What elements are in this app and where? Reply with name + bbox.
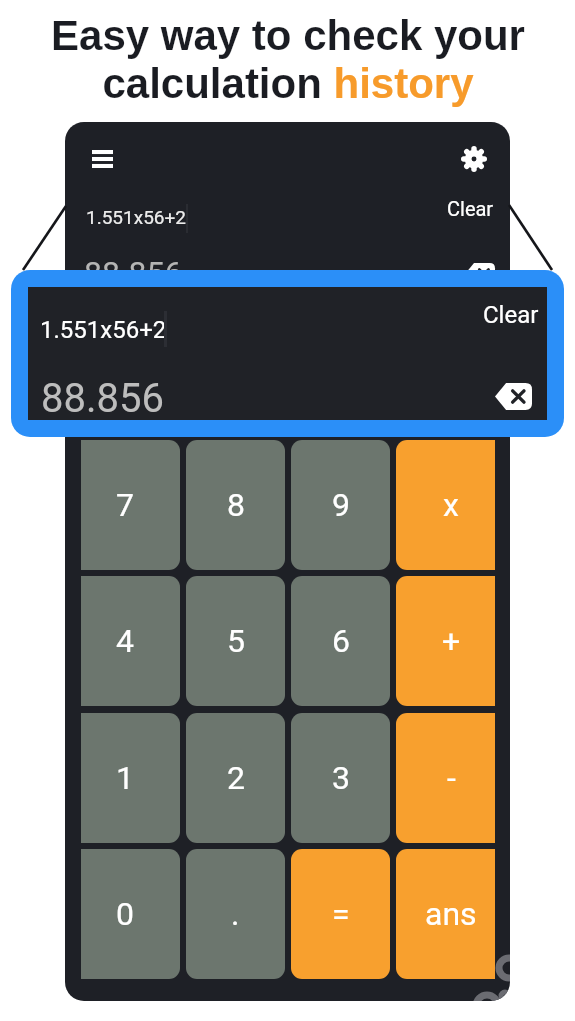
- staticText: Clear: [447, 197, 494, 220]
- button[interactable]: ans: [396, 849, 495, 979]
- button[interactable]: Backspace: [495, 383, 532, 410]
- button[interactable]: 5: [186, 576, 285, 706]
- staticText: 2: [227, 759, 245, 797]
- staticText: 9: [332, 486, 350, 524]
- staticText: 7: [116, 486, 134, 524]
- staticText: x: [443, 486, 459, 524]
- button[interactable]: 3: [291, 713, 390, 843]
- button[interactable]: Backspace: [465, 263, 495, 285]
- button[interactable]: 4: [81, 576, 180, 706]
- staticText: ans: [425, 895, 477, 933]
- button[interactable]: =: [291, 849, 390, 979]
- staticText: 3: [332, 759, 350, 797]
- staticText: 8: [227, 486, 245, 524]
- button[interactable]: -: [396, 713, 495, 843]
- staticText: 0: [116, 895, 134, 933]
- button[interactable]: 1: [81, 713, 180, 843]
- button[interactable]: 7: [81, 440, 180, 570]
- button[interactable]: 9: [291, 440, 390, 570]
- staticText: 1.551x56+2: [86, 206, 186, 228]
- staticText: Easy way to check your calculation histo…: [51, 12, 525, 107]
- button[interactable]: Settings: [461, 146, 487, 172]
- staticText: -: [447, 759, 456, 797]
- staticText: 1.551x56+2: [40, 316, 167, 344]
- button[interactable]: Menu: [92, 150, 113, 168]
- staticText: 88.856: [84, 254, 183, 292]
- button[interactable]: .: [186, 849, 285, 979]
- staticText: 5: [227, 622, 245, 660]
- staticText: +: [442, 622, 461, 660]
- staticText: 6: [332, 622, 350, 660]
- button[interactable]: +: [396, 576, 495, 706]
- button[interactable]: 2: [186, 713, 285, 843]
- button[interactable]: 6: [291, 576, 390, 706]
- button[interactable]: 0: [81, 849, 180, 979]
- staticText: 4: [116, 622, 134, 660]
- staticText: Clear: [483, 301, 539, 329]
- button[interactable]: 8: [186, 440, 285, 570]
- staticText: .: [231, 895, 240, 933]
- staticText: 88.856: [41, 375, 164, 422]
- staticText: =: [332, 895, 350, 933]
- button[interactable]: x: [396, 440, 495, 570]
- staticText: 1: [116, 759, 134, 797]
